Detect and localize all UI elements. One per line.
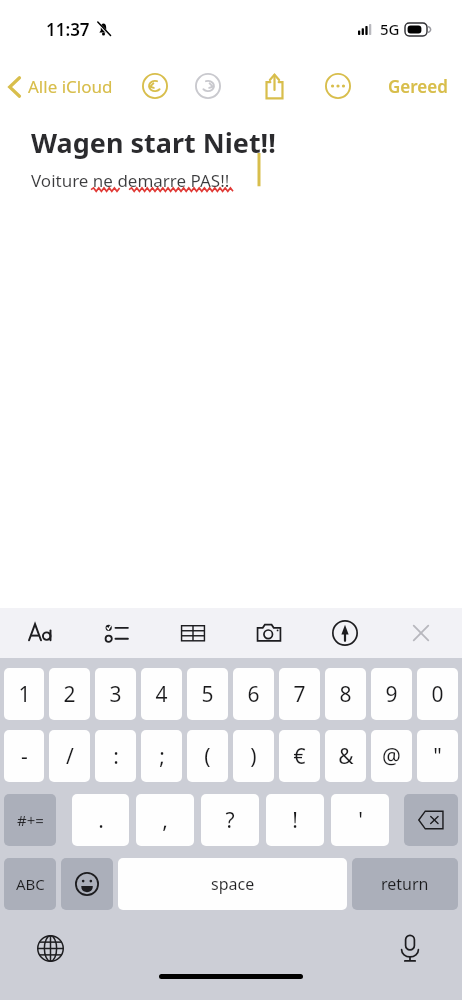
button[interactable]: 2: [49, 668, 90, 720]
button[interactable]: Alle iCloud: [8, 75, 113, 98]
staticText: ": [433, 742, 442, 771]
staticText: &: [338, 742, 354, 771]
button[interactable]: ': [331, 794, 389, 846]
staticText: 4: [155, 680, 168, 709]
staticText: 11:37: [46, 18, 90, 41]
button[interactable]: ): [233, 730, 274, 782]
button[interactable]: 6: [233, 668, 274, 720]
staticText: 8: [339, 680, 352, 709]
button[interactable]: space: [118, 858, 347, 910]
staticText: ,: [162, 806, 168, 835]
button[interactable]: ABC: [4, 858, 56, 910]
button[interactable]: Dictate: [390, 928, 430, 968]
button[interactable]: Text format: [18, 611, 64, 655]
button[interactable]: 8: [325, 668, 366, 720]
staticText: 5: [201, 680, 214, 709]
button[interactable]: /: [49, 730, 90, 782]
staticText: 5G: [380, 19, 400, 39]
button[interactable]: 1: [4, 668, 44, 720]
button[interactable]: ": [417, 730, 458, 782]
staticText: ?: [225, 806, 235, 835]
staticText: 2: [63, 680, 76, 709]
button[interactable]: :: [95, 730, 136, 782]
button[interactable]: Camera: [246, 611, 292, 655]
button[interactable]: Table: [170, 611, 216, 655]
staticText: #+=: [17, 810, 44, 830]
staticText: 7: [293, 680, 306, 709]
staticText: 9: [385, 680, 398, 709]
staticText: 0: [431, 680, 444, 709]
staticText: space: [211, 873, 255, 895]
button[interactable]: -: [4, 730, 44, 782]
button[interactable]: ;: [141, 730, 182, 782]
button[interactable]: 9: [371, 668, 412, 720]
button[interactable]: 4: [141, 668, 182, 720]
staticText: ): [250, 742, 257, 771]
button[interactable]: Share: [255, 67, 293, 105]
staticText: .: [98, 806, 104, 835]
staticText: 6: [247, 680, 260, 709]
staticText: 3: [109, 680, 122, 709]
staticText: ABC: [16, 874, 45, 894]
button[interactable]: 0: [417, 668, 458, 720]
button[interactable]: &: [325, 730, 366, 782]
staticText: Gereed: [388, 75, 448, 98]
staticText: Wagen start Niet!!: [31, 124, 276, 161]
button[interactable]: 5: [187, 668, 228, 720]
button[interactable]: !: [266, 794, 324, 846]
button[interactable]: Backspace: [404, 794, 458, 846]
button[interactable]: Close keyboard: [398, 611, 444, 655]
button[interactable]: Change keyboard language: [30, 928, 70, 968]
button[interactable]: 7: [279, 668, 320, 720]
staticText: 1: [18, 680, 31, 709]
staticText: €: [293, 742, 306, 771]
button[interactable]: ,: [136, 794, 194, 846]
button[interactable]: Gereed: [388, 75, 448, 98]
staticText: ': [358, 806, 363, 835]
button[interactable]: Undo: [138, 69, 172, 103]
button[interactable]: return: [352, 858, 458, 910]
staticText: :: [113, 742, 119, 771]
staticText: return: [381, 873, 429, 895]
staticText: @: [382, 742, 401, 771]
button[interactable]: €: [279, 730, 320, 782]
staticText: ;: [159, 742, 165, 771]
staticText: !: [292, 806, 298, 835]
button[interactable]: 3: [95, 668, 136, 720]
button[interactable]: More options: [321, 69, 355, 103]
button[interactable]: Checklist: [94, 611, 140, 655]
button[interactable]: @: [371, 730, 412, 782]
button[interactable]: Redo: [191, 69, 225, 103]
button[interactable]: (: [187, 730, 228, 782]
button[interactable]: Markup: [322, 611, 368, 655]
button[interactable]: Emoji: [61, 858, 113, 910]
staticText: Voiture ne demarre PAS!!: [31, 169, 230, 192]
button[interactable]: .: [72, 794, 129, 846]
button[interactable]: ?: [201, 794, 259, 846]
staticText: /: [66, 742, 74, 771]
staticText: -: [21, 742, 28, 771]
button[interactable]: #+=: [4, 794, 56, 846]
staticText: (: [204, 742, 211, 771]
staticText: Alle iCloud: [28, 75, 113, 98]
